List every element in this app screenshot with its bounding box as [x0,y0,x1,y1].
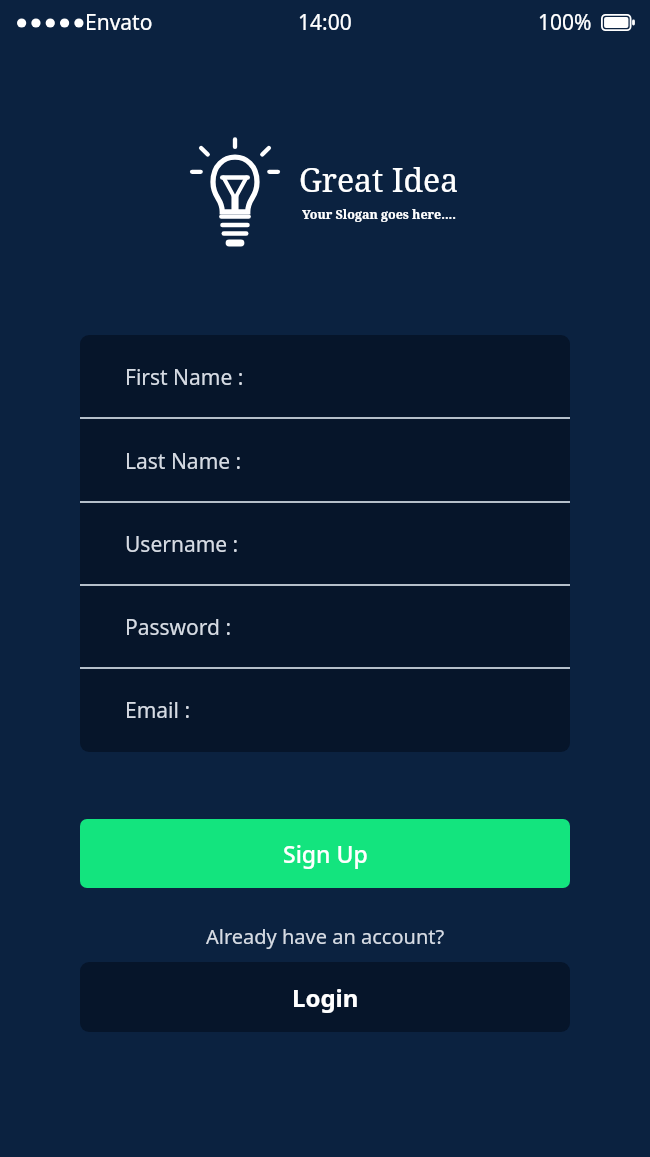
button[interactable]: Last Name : [80,419,570,503]
staticText: Already have an account? [206,923,445,950]
staticText: Username : [125,530,239,559]
button[interactable]: Password : [80,586,570,669]
staticText: 14:00 [298,8,352,37]
staticText: Password : [125,613,232,642]
staticText: 100% [538,8,592,37]
button[interactable]: Login [80,962,570,1032]
staticText: Login [292,981,359,1014]
button[interactable]: Username : [80,503,570,586]
staticText: Email : [125,696,191,725]
button[interactable]: Email : [80,669,570,752]
staticText: Sign Up [283,838,368,869]
staticText: Your Slogan goes here.... [302,206,456,223]
staticText: Last Name : [125,447,242,476]
button[interactable]: First Name : [80,335,570,419]
staticText: First Name : [125,363,244,392]
button[interactable]: Sign Up [80,819,570,888]
staticText: Envato [85,8,153,37]
staticText: Great Idea [299,158,459,202]
